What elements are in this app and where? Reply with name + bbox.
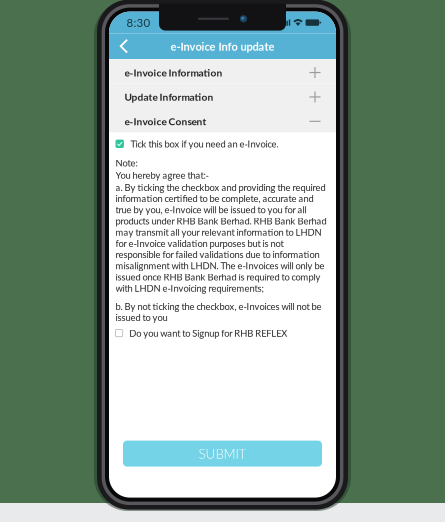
button[interactable]: Back — [109, 34, 139, 59]
button[interactable]: SUBMIT — [123, 441, 322, 467]
staticText: 8:30 — [126, 16, 150, 29]
staticText: Do you want to Signup for RHB REFLEX — [129, 327, 287, 339]
staticText: Update Information — [124, 91, 213, 103]
staticText: b. By not ticking the checkbox, e-Invoic… — [115, 301, 321, 323]
staticText: SUBMIT — [198, 446, 246, 462]
staticText: Note: — [115, 157, 137, 168]
button[interactable]: Tick this box if you need an e-Invoice. — [115, 134, 327, 153]
staticText: You hereby agree that:- — [115, 169, 208, 181]
staticText: e-Invoice Info update — [170, 40, 274, 53]
staticText: a. By ticking the checkbox and providing… — [115, 182, 326, 294]
button[interactable]: Update Information — [109, 83, 336, 108]
button[interactable]: e-Invoice Consent — [109, 108, 336, 132]
staticText: e-Invoice Consent — [124, 115, 206, 127]
button[interactable]: e-Invoice Information — [109, 59, 336, 83]
staticText: Tick this box if you need an e-Invoice. — [130, 138, 278, 149]
button[interactable]: Do you want to Signup for RHB REFLEX — [115, 323, 327, 343]
staticText: e-Invoice Information — [124, 66, 222, 79]
